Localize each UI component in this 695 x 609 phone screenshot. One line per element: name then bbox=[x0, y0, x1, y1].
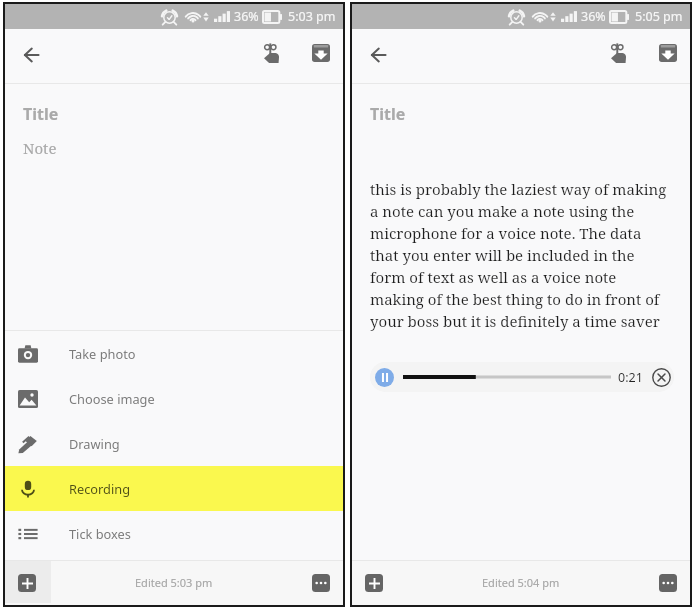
button[interactable]: Archive bbox=[649, 37, 687, 75]
button[interactable]: More options bbox=[659, 574, 677, 592]
button[interactable]: Pause bbox=[370, 362, 674, 392]
staticText: 5:05 pm bbox=[635, 8, 683, 25]
button[interactable]: Add attachment bbox=[18, 574, 36, 592]
button[interactable]: Back bbox=[364, 37, 402, 75]
staticText: 5:03 pm bbox=[288, 8, 336, 25]
button[interactable]: Delete recording bbox=[652, 368, 671, 387]
button[interactable]: Pin bbox=[595, 37, 633, 75]
staticText: 0:21 bbox=[618, 369, 643, 386]
staticText: Choose image bbox=[69, 390, 155, 407]
button[interactable]: Archive bbox=[302, 37, 340, 75]
staticText: Note bbox=[23, 138, 57, 158]
staticText: Take photo bbox=[69, 345, 136, 362]
button[interactable]: Add attachment bbox=[365, 574, 383, 592]
staticText: 36% bbox=[234, 8, 259, 25]
button[interactable]: Back bbox=[17, 37, 55, 75]
button[interactable]: Take photo bbox=[5, 331, 343, 376]
staticText: Edited 5:04 pm bbox=[482, 575, 560, 590]
button[interactable]: Recording bbox=[5, 466, 343, 511]
staticText: Title bbox=[23, 103, 59, 125]
button[interactable]: Tick boxes bbox=[5, 511, 343, 556]
staticText: Drawing bbox=[69, 435, 120, 452]
button[interactable]: Pin bbox=[248, 37, 286, 75]
button[interactable]: Drawing bbox=[5, 421, 343, 466]
staticText: Recording bbox=[69, 480, 131, 497]
button[interactable]: Pause bbox=[375, 368, 394, 387]
button[interactable]: More options bbox=[312, 574, 330, 592]
staticText: 36% bbox=[581, 8, 606, 25]
staticText: Title bbox=[370, 103, 406, 125]
staticText: Tick boxes bbox=[69, 525, 131, 542]
staticText: this is probably the laziest way of maki… bbox=[370, 179, 669, 332]
button[interactable]: Choose image bbox=[5, 376, 343, 421]
staticText: Edited 5:03 pm bbox=[135, 575, 213, 590]
